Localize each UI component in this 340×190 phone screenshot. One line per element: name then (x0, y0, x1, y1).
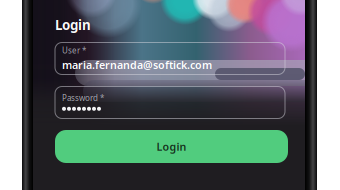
button[interactable]: User * (55, 42, 285, 74)
staticText: Login (156, 139, 186, 154)
staticText: Password * (62, 93, 104, 103)
staticText: maria.fernanda@softick.com (62, 58, 212, 72)
button[interactable]: Login (55, 130, 288, 163)
button[interactable]: Password * (55, 86, 285, 118)
staticText: Login (55, 16, 91, 34)
staticText: User * (62, 45, 86, 56)
